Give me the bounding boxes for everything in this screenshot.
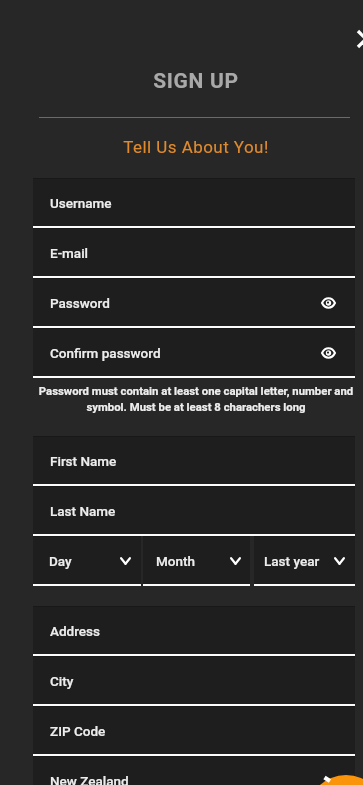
staticText: ZIP Code (50, 723, 106, 739)
button[interactable]: Confirm password (33, 328, 355, 378)
staticText: Username (50, 195, 112, 211)
button[interactable]: Last year (254, 536, 355, 586)
button[interactable]: Month (143, 536, 250, 586)
staticText: Password (50, 295, 110, 311)
staticText: Confirm password (50, 345, 161, 361)
staticText: Password must contain at least one capit… (35, 384, 357, 414)
staticText: New Zealand (50, 773, 129, 785)
staticText: City (50, 673, 74, 689)
button[interactable]: Day (33, 536, 141, 586)
button[interactable]: ZIP Code (33, 706, 355, 756)
button[interactable]: Close (354, 27, 363, 51)
other: Expand (334, 557, 345, 565)
staticText: Address (50, 623, 101, 639)
other: Expand (120, 557, 131, 565)
staticText: Last year (264, 553, 320, 569)
button[interactable]: New Zealand (33, 756, 355, 785)
button[interactable]: Last Name (33, 486, 355, 536)
staticText: Tell Us About You! (35, 137, 357, 157)
staticText: SIGN UP (35, 69, 357, 94)
staticText: E-mail (50, 245, 89, 261)
other: Expand (230, 557, 241, 565)
button[interactable]: Username (33, 178, 355, 228)
other: Show password (321, 297, 336, 309)
staticText: Last Name (50, 503, 116, 519)
button[interactable]: E-mail (33, 228, 355, 278)
staticText: First Name (50, 453, 117, 469)
other: Show password (321, 347, 336, 359)
button[interactable]: Continue (307, 775, 363, 785)
staticText: Day (49, 553, 72, 569)
button[interactable]: Password (33, 278, 355, 328)
button[interactable]: City (33, 656, 355, 706)
button[interactable]: Address (33, 606, 355, 656)
staticText: Month (156, 553, 196, 569)
button[interactable]: First Name (33, 436, 355, 486)
